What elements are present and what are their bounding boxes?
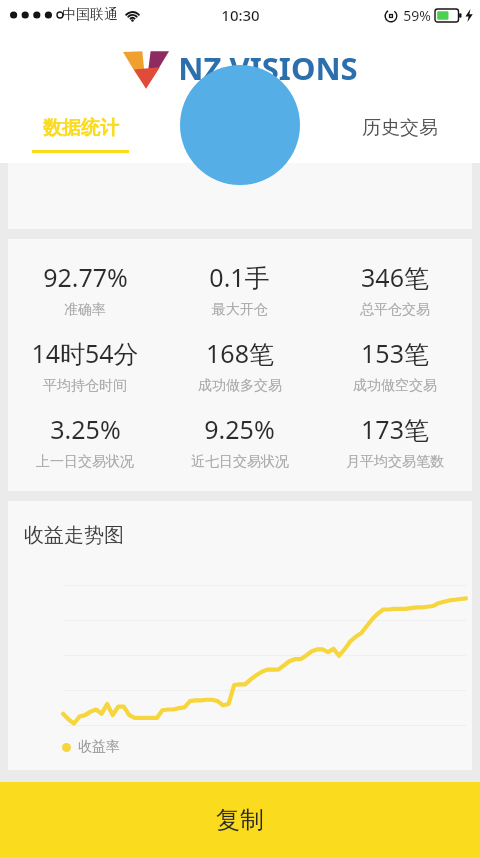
- staticText: 346笔: [361, 260, 429, 294]
- staticText: 月平均交易笔数: [346, 453, 444, 471]
- staticText: 最大开仓: [212, 301, 268, 319]
- staticText: 收益率: [78, 738, 120, 756]
- staticText: NZ VISIONS: [178, 47, 358, 89]
- staticText: 3.25%: [50, 412, 121, 446]
- staticText: 数据统计: [43, 116, 119, 140]
- staticText: 0.1手: [209, 260, 270, 294]
- button[interactable]: 复制: [0, 782, 480, 857]
- button[interactable]: 历史交易: [320, 105, 480, 163]
- staticText: 10:30: [221, 5, 260, 25]
- button[interactable]: 当前交易: [160, 105, 320, 163]
- button[interactable]: 数据统计: [0, 105, 160, 163]
- staticText: 收益走势图: [24, 523, 124, 548]
- staticText: 近七日交易状况: [191, 453, 289, 471]
- staticText: 中国联通: [62, 6, 118, 24]
- staticText: 成功做多交易: [198, 377, 282, 395]
- staticText: 173笔: [361, 412, 429, 446]
- staticText: 168笔: [206, 336, 274, 370]
- staticText: 上一日交易状况: [36, 453, 134, 471]
- staticText: 14时54分: [31, 336, 139, 370]
- staticText: 92.77%: [43, 260, 128, 294]
- staticText: 9.25%: [204, 412, 275, 446]
- staticText: 平均持仓时间: [43, 377, 127, 395]
- staticText: 59%: [403, 6, 431, 25]
- staticText: 成功做空交易: [353, 377, 437, 395]
- staticText: 153笔: [361, 336, 429, 370]
- staticText: 总平仓交易: [360, 301, 430, 319]
- staticText: 复制: [216, 805, 264, 835]
- staticText: 准确率: [64, 301, 106, 319]
- staticText: 历史交易: [362, 116, 438, 140]
